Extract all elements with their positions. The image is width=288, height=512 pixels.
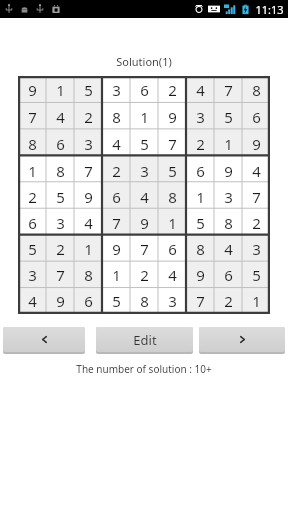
staticText: 4 xyxy=(252,161,261,181)
button[interactable]: 1 xyxy=(74,236,102,262)
button[interactable]: 3 xyxy=(46,210,74,236)
button[interactable]: 1 xyxy=(186,184,214,210)
button[interactable]: 7 xyxy=(18,103,46,130)
button[interactable]: 8 xyxy=(46,157,74,184)
button[interactable]: 2 xyxy=(74,103,102,130)
button[interactable]: 2 xyxy=(102,157,130,184)
staticText: 2 xyxy=(140,265,149,285)
button[interactable]: 9 xyxy=(130,210,158,236)
button[interactable]: 5 xyxy=(102,288,130,314)
button[interactable]: 4 xyxy=(74,210,102,236)
button[interactable]: 7 xyxy=(158,130,186,157)
button[interactable]: 6 xyxy=(74,288,102,314)
button[interactable]: 9 xyxy=(74,184,102,210)
staticText: 9 xyxy=(140,213,149,233)
button[interactable]: 7 xyxy=(130,236,158,262)
button[interactable]: 3 xyxy=(214,184,242,210)
button[interactable]: 1 xyxy=(130,103,158,130)
button[interactable]: 9 xyxy=(242,130,270,157)
button[interactable]: 5 xyxy=(130,130,158,157)
button[interactable]: 1 xyxy=(158,210,186,236)
staticText: 4 xyxy=(84,213,93,233)
button[interactable]: 5 xyxy=(18,236,46,262)
button[interactable]: 3 xyxy=(102,76,130,103)
staticText: 5 xyxy=(56,187,65,207)
button[interactable]: 5 xyxy=(242,262,270,288)
button[interactable]: 8 xyxy=(18,130,46,157)
button[interactable]: 5 xyxy=(214,103,242,130)
button[interactable]: 6 xyxy=(242,103,270,130)
button[interactable]: 9 xyxy=(18,76,46,103)
staticText: 6 xyxy=(56,134,65,154)
button[interactable]: 8 xyxy=(74,262,102,288)
button[interactable]: 5 xyxy=(74,76,102,103)
button[interactable]: 2 xyxy=(186,130,214,157)
button[interactable]: 4 xyxy=(46,103,74,130)
button[interactable]: 2 xyxy=(46,236,74,262)
staticText: 7 xyxy=(84,161,93,181)
button[interactable]: 1 xyxy=(242,288,270,314)
button[interactable]: 8 xyxy=(186,236,214,262)
button[interactable]: 6 xyxy=(18,210,46,236)
button[interactable]: 4 xyxy=(242,157,270,184)
button[interactable]: 6 xyxy=(214,262,242,288)
button[interactable]: 3 xyxy=(74,130,102,157)
button[interactable]: Next solution xyxy=(199,327,285,354)
button[interactable]: 8 xyxy=(242,76,270,103)
button[interactable]: 5 xyxy=(158,157,186,184)
button[interactable]: 2 xyxy=(130,262,158,288)
button[interactable]: 7 xyxy=(242,184,270,210)
button[interactable]: 4 xyxy=(214,236,242,262)
button[interactable]: 9 xyxy=(186,262,214,288)
staticText: 5 xyxy=(28,239,37,259)
button[interactable]: 5 xyxy=(46,184,74,210)
button[interactable]: 7 xyxy=(46,262,74,288)
button[interactable]: 9 xyxy=(214,157,242,184)
button[interactable]: 4 xyxy=(130,184,158,210)
button[interactable]: 4 xyxy=(186,76,214,103)
button[interactable]: 7 xyxy=(74,157,102,184)
button[interactable]: 2 xyxy=(242,210,270,236)
button[interactable]: 7 xyxy=(102,210,130,236)
button[interactable]: 9 xyxy=(158,103,186,130)
button[interactable]: 8 xyxy=(102,103,130,130)
button[interactable]: 6 xyxy=(130,76,158,103)
button[interactable]: 3 xyxy=(18,262,46,288)
staticText: 2 xyxy=(28,187,37,207)
button[interactable]: 2 xyxy=(158,76,186,103)
button[interactable]: Previous solution xyxy=(3,327,85,354)
button[interactable]: 9 xyxy=(46,288,74,314)
button[interactable]: 3 xyxy=(242,236,270,262)
button[interactable]: 2 xyxy=(18,184,46,210)
staticText: 2 xyxy=(84,107,93,127)
button[interactable]: Edit xyxy=(96,327,193,354)
button[interactable]: 8 xyxy=(158,184,186,210)
button[interactable]: 3 xyxy=(130,157,158,184)
button[interactable]: 1 xyxy=(18,157,46,184)
button[interactable]: 1 xyxy=(102,262,130,288)
staticText: 7 xyxy=(224,80,233,100)
button[interactable]: 4 xyxy=(158,262,186,288)
button[interactable]: 1 xyxy=(46,76,74,103)
staticText: 1 xyxy=(84,239,93,259)
button[interactable]: 7 xyxy=(214,76,242,103)
button[interactable]: 9 xyxy=(102,236,130,262)
button[interactable]: 6 xyxy=(158,236,186,262)
button[interactable]: 2 xyxy=(214,288,242,314)
staticText: 9 xyxy=(252,134,261,154)
button[interactable]: 7 xyxy=(186,288,214,314)
button[interactable]: 6 xyxy=(46,130,74,157)
staticText: 3 xyxy=(252,239,261,259)
button[interactable]: 3 xyxy=(158,288,186,314)
staticText: 8 xyxy=(84,265,93,285)
button[interactable]: 3 xyxy=(186,103,214,130)
button[interactable]: 4 xyxy=(102,130,130,157)
button[interactable]: 1 xyxy=(214,130,242,157)
button[interactable]: 5 xyxy=(186,210,214,236)
button[interactable]: 8 xyxy=(130,288,158,314)
button[interactable]: 6 xyxy=(102,184,130,210)
button[interactable]: 6 xyxy=(186,157,214,184)
staticText: 5 xyxy=(252,265,261,285)
button[interactable]: 8 xyxy=(214,210,242,236)
button[interactable]: 4 xyxy=(18,288,46,314)
